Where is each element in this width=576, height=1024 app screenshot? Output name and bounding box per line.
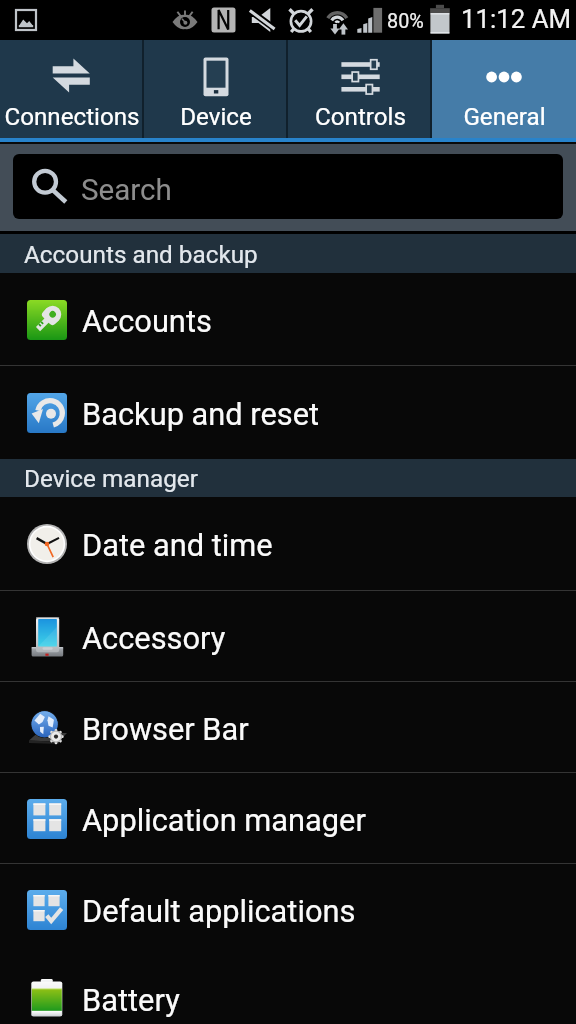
staticText: Accounts and backup bbox=[24, 240, 258, 268]
staticText: Search bbox=[81, 173, 172, 208]
button[interactable]: Connections bbox=[0, 40, 144, 142]
button[interactable]: Controls bbox=[288, 40, 432, 142]
button[interactable]: Accessory bbox=[0, 591, 576, 682]
button[interactable]: General bbox=[432, 40, 576, 142]
button[interactable]: Accounts bbox=[0, 273, 576, 366]
other: Screenshot captured bbox=[16, 10, 37, 31]
button[interactable]: Battery bbox=[0, 944, 576, 1024]
staticText: Accounts bbox=[82, 303, 212, 339]
button[interactable]: Application manager bbox=[0, 773, 576, 864]
staticText: Device manager bbox=[24, 464, 198, 492]
button[interactable]: Date and time bbox=[0, 497, 576, 591]
staticText: Default applications bbox=[82, 893, 356, 929]
staticText: Backup and reset bbox=[82, 396, 320, 432]
staticText: General bbox=[463, 103, 546, 131]
button[interactable]: Default applications bbox=[0, 864, 576, 956]
staticText: 80% bbox=[387, 10, 424, 33]
staticText: Date and time bbox=[82, 527, 273, 563]
staticText: Connections bbox=[4, 103, 140, 131]
staticText: 11:12 AM bbox=[461, 4, 571, 34]
staticText: Controls bbox=[315, 103, 406, 131]
button[interactable]: Device bbox=[144, 40, 288, 142]
staticText: Browser Bar bbox=[82, 711, 249, 747]
staticText: Accessory bbox=[82, 620, 226, 656]
button[interactable]: Search bbox=[13, 154, 563, 219]
staticText: Application manager bbox=[82, 802, 366, 838]
button[interactable]: Backup and reset bbox=[0, 366, 576, 459]
button[interactable]: Browser Bar bbox=[0, 682, 576, 773]
staticText: Battery bbox=[82, 982, 180, 1018]
staticText: Device bbox=[180, 103, 252, 131]
